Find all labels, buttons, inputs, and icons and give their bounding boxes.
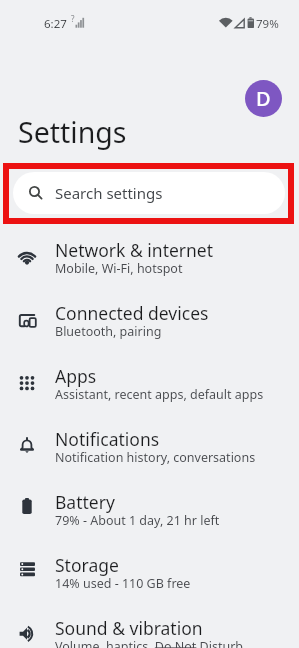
staticText: 14% used - 110 GB free — [55, 575, 191, 592]
staticText: Mobile, Wi-Fi, hotspot — [55, 260, 183, 277]
staticText: 79% — [256, 16, 279, 32]
button[interactable]: Network & internet — [0, 238, 299, 301]
button[interactable]: Sound & vibration — [0, 616, 299, 648]
staticText: Bluetooth, pairing — [55, 323, 162, 340]
staticText: D — [256, 85, 271, 112]
staticText: Notifications — [55, 427, 160, 451]
button[interactable]: Battery — [0, 490, 299, 553]
button[interactable]: Apps — [0, 364, 299, 427]
staticText: Volume, haptics, Do Not Disturb — [55, 638, 244, 648]
button[interactable]: Connected devices — [0, 301, 299, 364]
staticText: Search settings — [55, 183, 163, 203]
staticText: Battery — [55, 490, 115, 514]
staticText: Settings — [18, 113, 127, 152]
staticText: Storage — [55, 553, 119, 577]
staticText: Assistant, recent apps, default apps — [55, 386, 264, 403]
staticText: 79% - About 1 day, 21 hr left — [55, 512, 220, 529]
staticText: ? — [71, 13, 75, 24]
button[interactable]: D — [245, 80, 282, 117]
button[interactable]: Notifications — [0, 427, 299, 490]
staticText: Sound & vibration — [55, 616, 203, 640]
staticText: Apps — [55, 364, 97, 388]
staticText: 6:27 — [44, 16, 67, 32]
staticText: Notification history, conversations — [55, 449, 256, 466]
button[interactable]: Search settings — [13, 172, 285, 214]
staticText: Network & internet — [55, 238, 214, 262]
staticText: Connected devices — [55, 301, 209, 325]
button[interactable]: Storage — [0, 553, 299, 616]
